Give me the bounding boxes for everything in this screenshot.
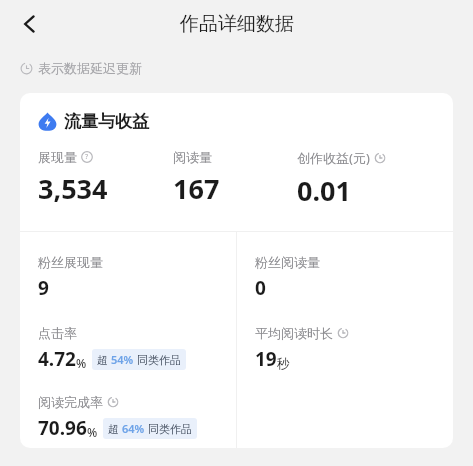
staticText: 超 (108, 422, 119, 436)
staticText: 0.01 (297, 172, 351, 209)
staticText: 70.96 (38, 415, 87, 441)
staticText: 流量与收益 (64, 111, 149, 132)
staticText: 0 (255, 275, 266, 301)
staticText: 平均阅读时长 (255, 325, 333, 341)
staticText: 167 (173, 170, 220, 207)
staticText: 阅读完成率 (38, 394, 103, 410)
staticText: 秒 (277, 355, 290, 371)
button[interactable]: 点击率 (38, 325, 186, 372)
staticText: ? (85, 152, 89, 162)
staticText: 表示数据延迟更新 (38, 60, 142, 76)
staticText: 同类作品 (137, 353, 181, 367)
staticText: 粉丝阅读量 (255, 254, 320, 270)
staticText: % (76, 355, 87, 371)
staticText: 64% (122, 421, 145, 436)
staticText: 点击率 (38, 325, 77, 341)
staticText: 3,534 (38, 170, 108, 207)
button[interactable]: 超 (92, 349, 186, 370)
button[interactable]: 粉丝阅读量 (255, 254, 320, 301)
button[interactable]: Back (10, 4, 50, 44)
staticText: 54% (111, 352, 134, 367)
staticText: 超 (97, 353, 108, 367)
staticText: 19 (255, 346, 277, 372)
button[interactable]: 展现量 (38, 149, 173, 207)
staticText: 4.72 (38, 346, 76, 372)
button[interactable]: 流量与收益 (38, 111, 149, 132)
staticText: 同类作品 (148, 422, 192, 436)
button[interactable]: 平均阅读时长 (255, 325, 349, 372)
button[interactable]: 超 (103, 418, 197, 439)
staticText: 阅读量 (173, 149, 212, 165)
staticText: 9 (38, 275, 49, 301)
staticText: 粉丝展现量 (38, 254, 103, 270)
button[interactable]: 阅读量 (173, 149, 297, 207)
button[interactable]: 粉丝展现量 (38, 254, 103, 301)
staticText: 展现量 (38, 149, 77, 165)
staticText: 创作收益(元) (297, 149, 370, 167)
staticText: 作品详细数据 (180, 12, 294, 36)
button[interactable]: 创作收益(元) (297, 149, 439, 209)
staticText: % (87, 424, 98, 440)
button[interactable]: 阅读完成率 (38, 394, 197, 441)
